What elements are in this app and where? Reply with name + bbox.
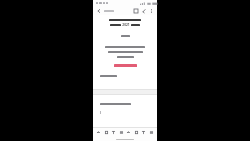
staticText: 2021 [122, 23, 130, 27]
button[interactable]: Align [118, 129, 125, 136]
button[interactable]: Redo [140, 129, 147, 136]
button[interactable]: Edit [148, 129, 155, 136]
button[interactable]: Attach [140, 7, 148, 15]
button[interactable]: List [125, 129, 132, 136]
button[interactable]: Undo [95, 129, 102, 136]
button[interactable]: Copy [103, 129, 110, 136]
button[interactable]: More options [148, 7, 155, 14]
button[interactable] [93, 64, 157, 67]
button[interactable]: View mode [132, 7, 140, 15]
button[interactable]: Text format [110, 129, 117, 136]
button[interactable]: Insert [133, 129, 140, 136]
button[interactable]: Back [95, 7, 103, 15]
